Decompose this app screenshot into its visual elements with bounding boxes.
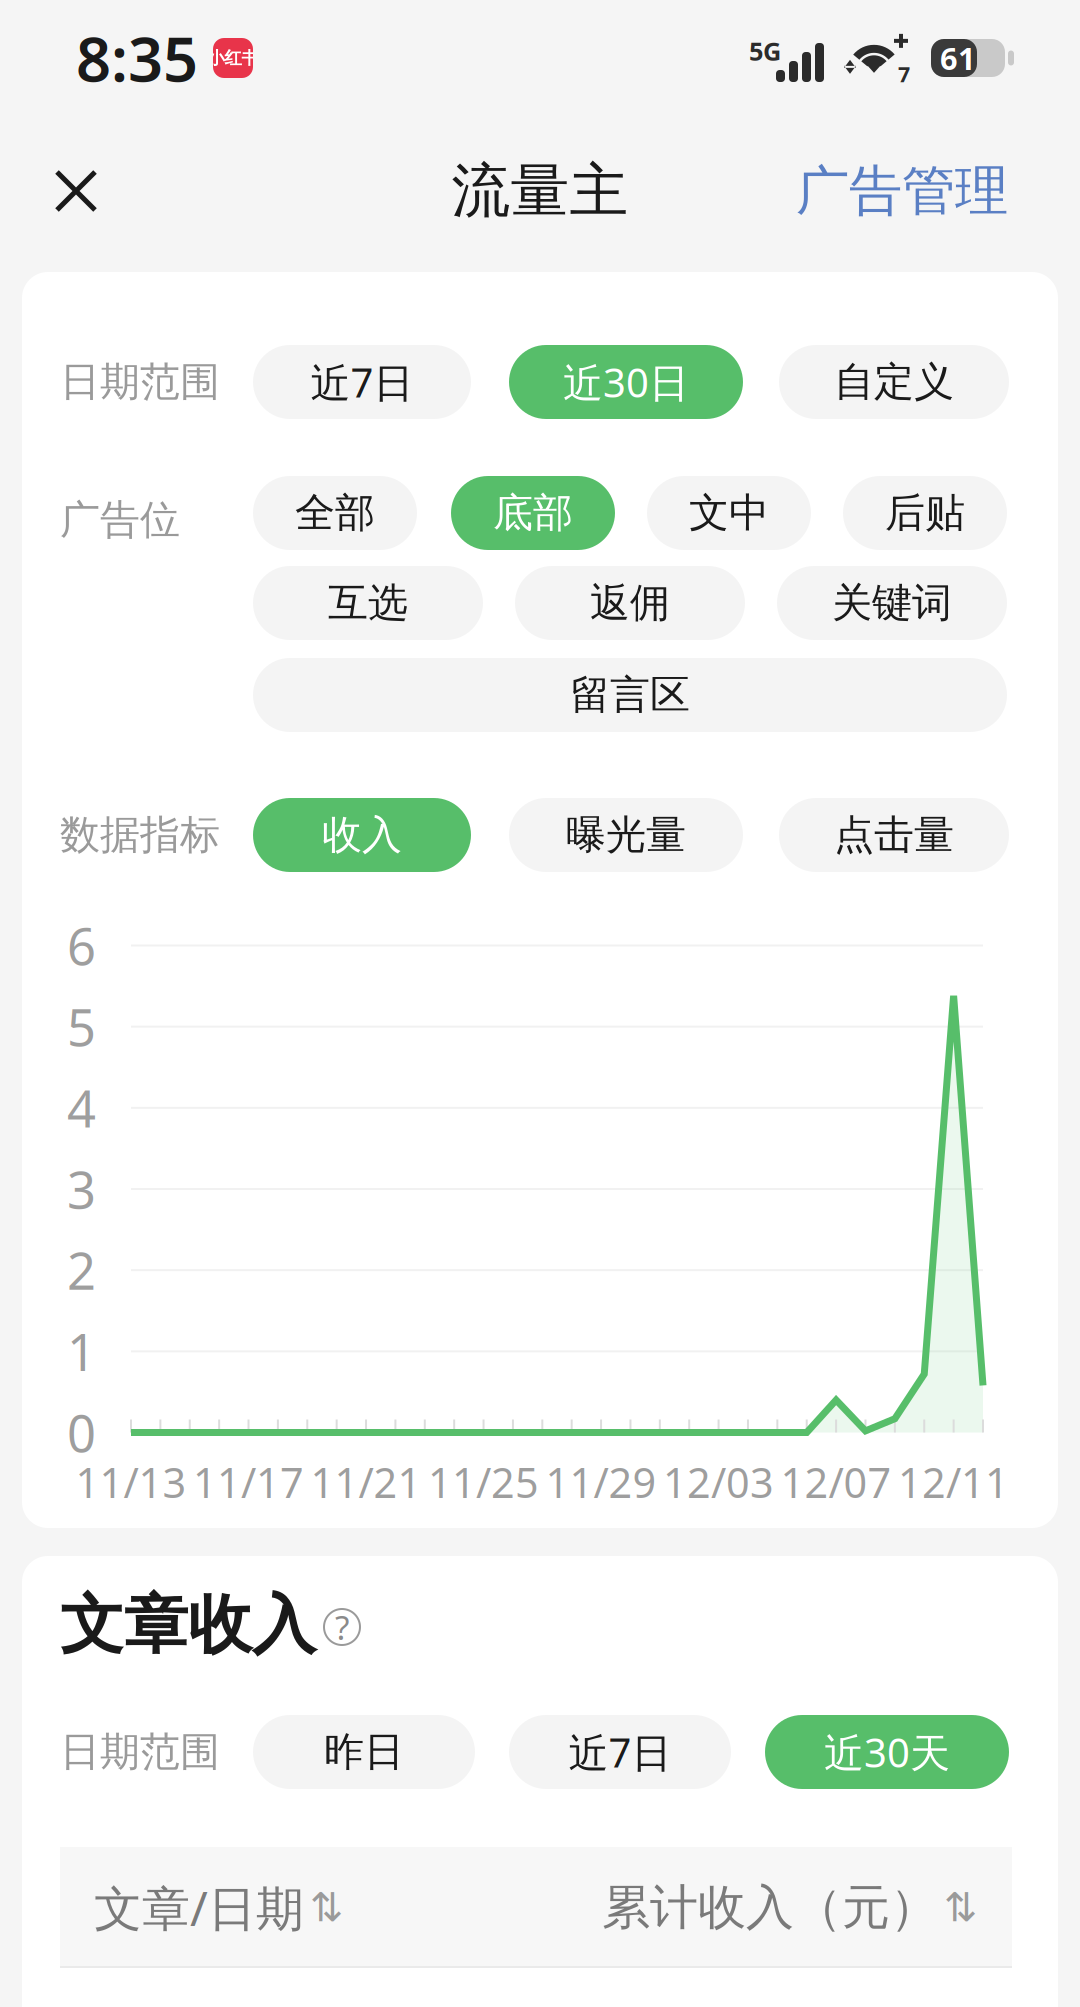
button[interactable]: 收入 [253, 798, 471, 872]
staticText: 2 [67, 1236, 96, 1304]
staticText: 文章/日期 [94, 1876, 304, 1939]
staticText: 广告位 [60, 495, 180, 544]
staticText: 互选 [328, 578, 408, 627]
staticText: 12/11 [898, 1455, 1009, 1509]
staticText: 11/29 [546, 1455, 657, 1509]
button[interactable]: 底部 [451, 476, 615, 550]
staticText: 8:35 [76, 17, 198, 99]
staticText: 近30天 [824, 1725, 950, 1778]
staticText: ? [335, 1605, 349, 1649]
staticText: 11/21 [310, 1455, 421, 1509]
staticText: 自定义 [834, 357, 954, 406]
button[interactable]: 曝光量 [509, 798, 743, 872]
staticText: 昨日 [324, 1727, 404, 1776]
button[interactable]: 全部 [253, 476, 417, 550]
staticText: 流量主 [451, 155, 628, 227]
staticText: 近30日 [563, 355, 689, 408]
staticText: 12/07 [781, 1455, 892, 1509]
staticText: 61 [940, 38, 976, 78]
button[interactable]: 点击量 [779, 798, 1009, 872]
button[interactable]: 广告管理 [772, 130, 1032, 252]
staticText: 5 [67, 993, 96, 1060]
button[interactable]: 关闭 [26, 141, 126, 241]
staticText: 11/25 [428, 1455, 539, 1509]
button[interactable]: 昨日 [253, 1715, 475, 1789]
button[interactable]: 后贴 [843, 476, 1007, 550]
staticText: 小红书 [207, 47, 258, 69]
staticText: 点击量 [834, 810, 954, 859]
staticText: 全部 [295, 488, 375, 537]
staticText: 4 [67, 1074, 96, 1141]
staticText: 广告管理 [796, 158, 1008, 224]
staticText: 5G [749, 34, 781, 68]
staticText: 0 [67, 1399, 96, 1466]
staticText: 曝光量 [566, 810, 686, 859]
staticText: 文章收入 [60, 1586, 316, 1664]
staticText: 后贴 [885, 488, 965, 537]
staticText: 6 [67, 912, 96, 979]
staticText: 7 [898, 60, 910, 88]
staticText: 关键词 [832, 578, 952, 627]
button[interactable]: 自定义 [779, 345, 1009, 419]
button[interactable]: 近7日 [253, 345, 471, 419]
button[interactable]: 关键词 [777, 566, 1007, 640]
staticText: 1 [67, 1318, 96, 1385]
staticText: 日期范围 [60, 1727, 220, 1776]
staticText: 累计收入（元） [602, 1878, 938, 1937]
button[interactable]: 留言区 [253, 658, 1007, 732]
staticText: 11/13 [75, 1455, 186, 1509]
staticText: 近7日 [568, 1725, 671, 1778]
staticText: 11/17 [193, 1455, 304, 1509]
button[interactable]: 近30日 [509, 345, 743, 419]
staticText: 底部 [493, 488, 573, 537]
staticText: 12/03 [663, 1455, 774, 1509]
staticText: 文中 [689, 488, 769, 537]
button[interactable]: 互选 [253, 566, 483, 640]
button[interactable]: 返佣 [515, 566, 745, 640]
staticText: 近7日 [310, 355, 413, 408]
staticText: ⇅ [310, 1885, 344, 1930]
staticText: 收入 [322, 810, 402, 859]
staticText: 留言区 [570, 670, 690, 719]
staticText: ⇅ [944, 1885, 978, 1930]
staticText: 日期范围 [60, 357, 220, 406]
button[interactable]: 近7日 [509, 1715, 731, 1789]
staticText: 返佣 [590, 578, 670, 627]
button[interactable]: 文中 [647, 476, 811, 550]
button[interactable]: 近30天 [765, 1715, 1009, 1789]
staticText: 3 [67, 1155, 96, 1223]
staticText: 数据指标 [60, 810, 220, 859]
